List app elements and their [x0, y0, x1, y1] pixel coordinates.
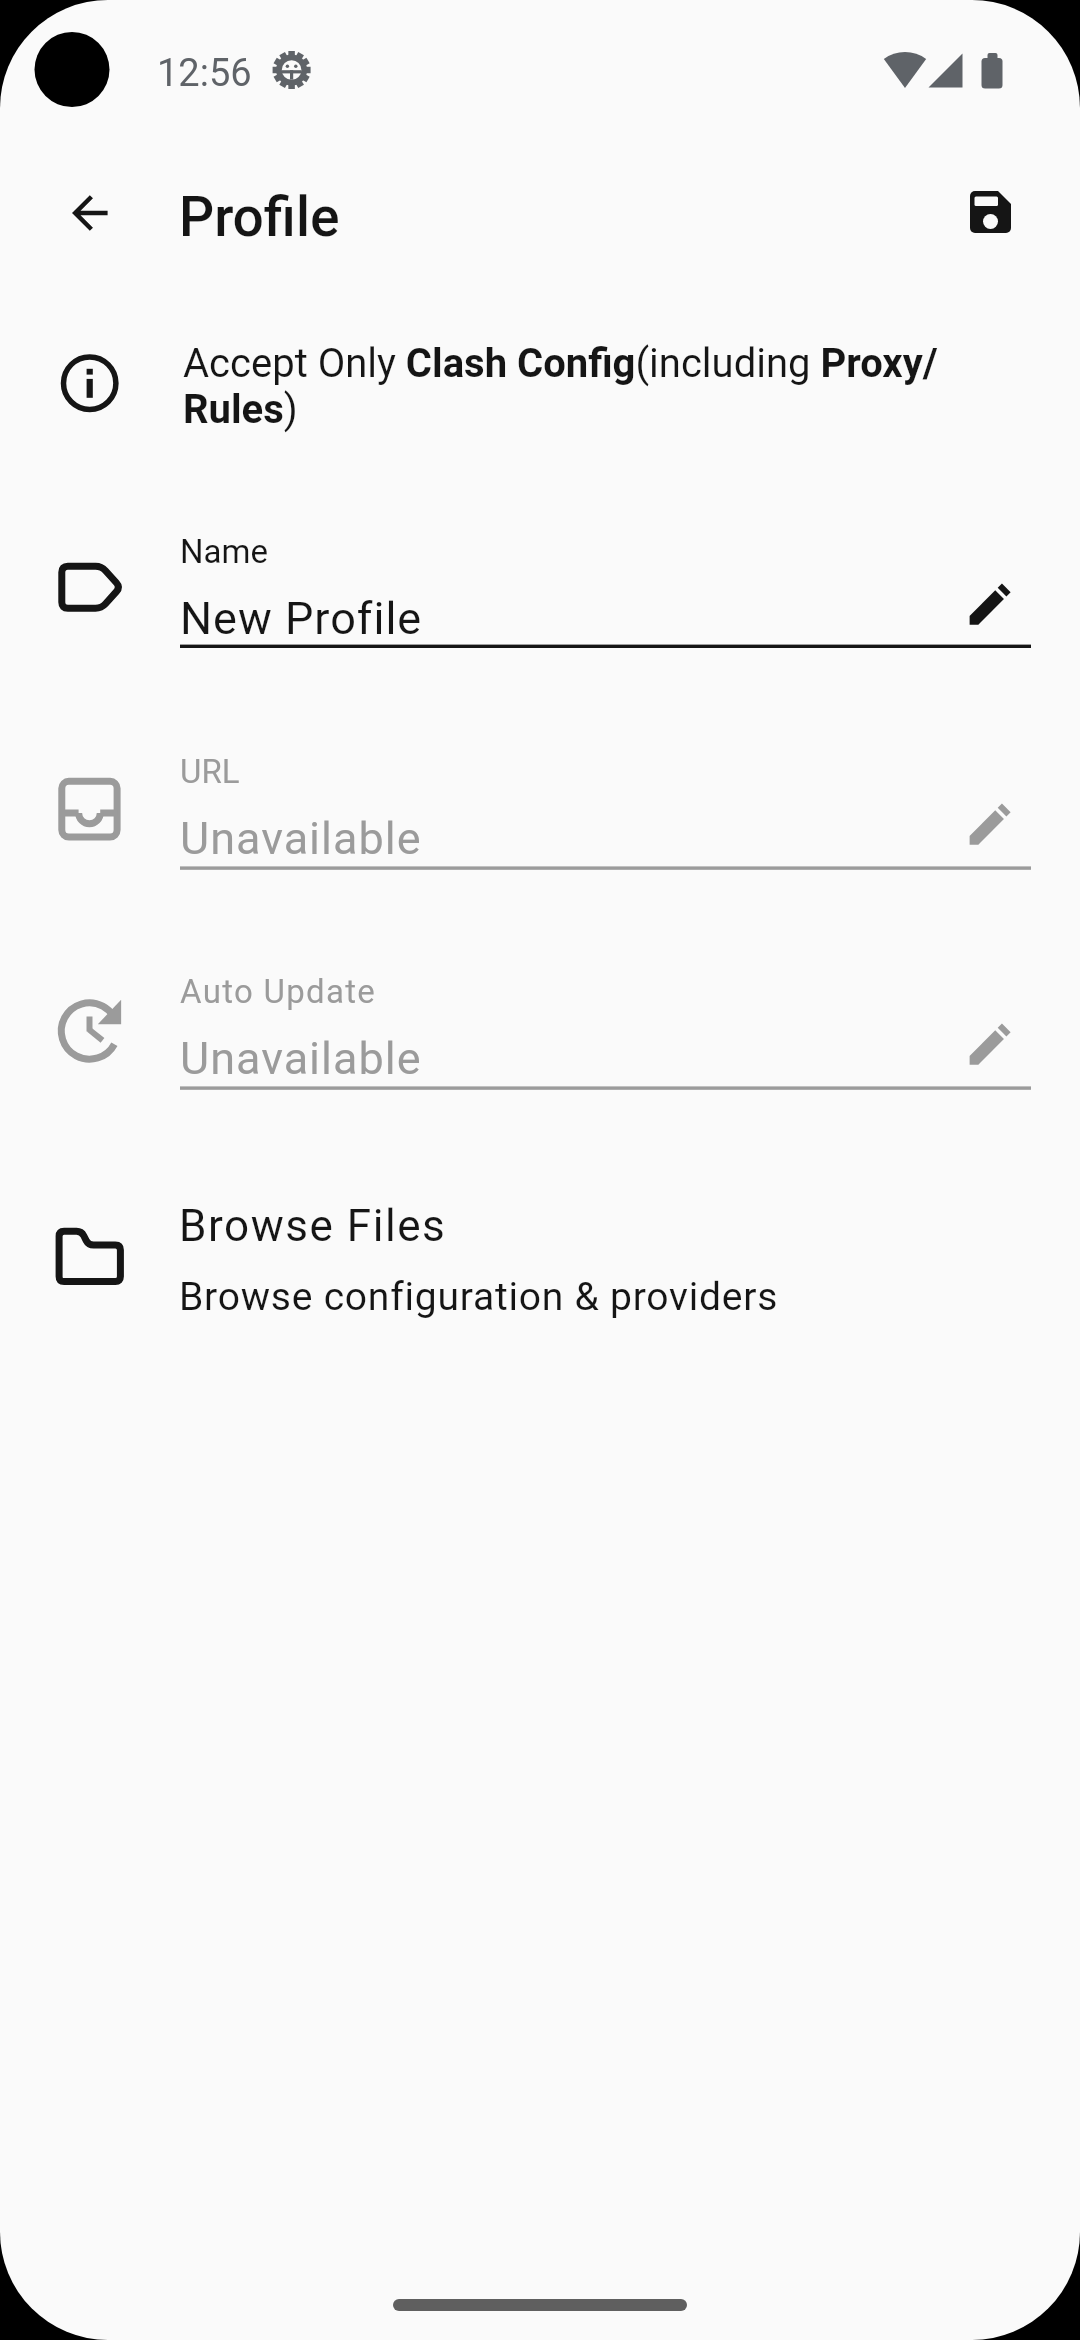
button[interactable]: [946, 168, 1034, 256]
staticText: URL: [180, 752, 240, 791]
staticText: Auto Update: [180, 972, 377, 1011]
staticText: Rules): [183, 386, 298, 433]
staticText: Name: [180, 532, 268, 571]
button[interactable]: [0, 500, 1080, 720]
staticText: 12:56: [157, 51, 252, 96]
staticText: Profile: [179, 185, 340, 249]
button[interactable]: [48, 169, 136, 257]
button[interactable]: [0, 720, 1080, 940]
staticText: Accept Only Clash Config(including Proxy…: [183, 340, 938, 387]
button[interactable]: [0, 940, 1080, 1160]
staticText: Unavailable: [180, 812, 422, 865]
staticText: Unavailable: [180, 1032, 422, 1085]
staticText: Browse Files: [179, 1200, 447, 1252]
staticText: New Profile: [180, 592, 423, 645]
staticText: Browse configuration & providers: [179, 1274, 779, 1320]
button[interactable]: [0, 1160, 1080, 1340]
